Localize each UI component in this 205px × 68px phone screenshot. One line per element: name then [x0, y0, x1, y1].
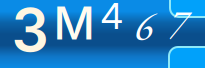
staticText: 7: [168, 0, 187, 50]
staticText: 6: [134, 0, 153, 52]
staticText: M: [53, 0, 94, 50]
staticText: 3: [11, 0, 48, 65]
staticText: 4: [100, 0, 123, 38]
